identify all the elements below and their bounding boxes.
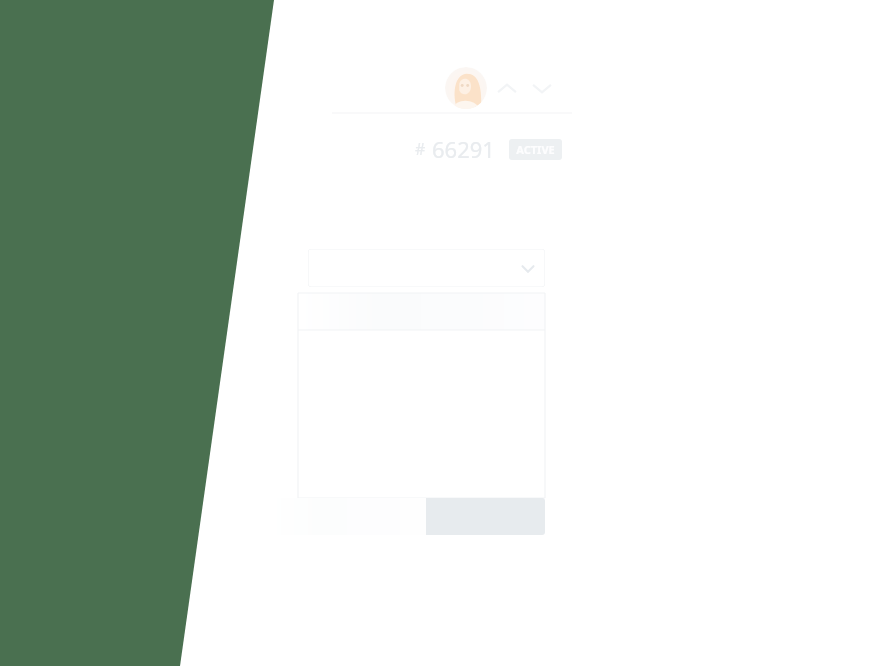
button[interactable]: Previous [494, 76, 520, 102]
button[interactable]: Next [529, 76, 555, 102]
button[interactable]: Account [445, 67, 487, 109]
staticText: ACTIVE [516, 142, 555, 157]
staticText: # [415, 138, 426, 160]
button[interactable]: ACTIVE [509, 139, 562, 160]
staticText: 66291 [432, 134, 495, 164]
